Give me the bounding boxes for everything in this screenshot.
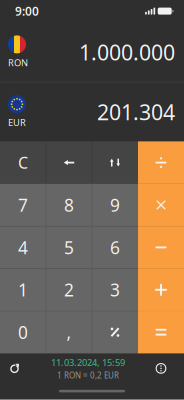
staticText: 4 [18, 236, 28, 259]
staticText: EUR [8, 116, 26, 129]
button[interactable]: C [0, 141, 46, 184]
button[interactable] [138, 226, 184, 269]
staticText: 8 [64, 193, 74, 216]
button[interactable]: 5 [46, 226, 92, 269]
button[interactable] [138, 184, 184, 226]
staticText: 201.304 [97, 98, 175, 126]
button[interactable]: 3 [92, 269, 138, 311]
button[interactable] [92, 141, 138, 184]
button[interactable]: 0 [0, 311, 46, 353]
staticText: 5 [64, 236, 74, 259]
staticText: RON [8, 56, 28, 69]
button[interactable] [138, 311, 184, 353]
button[interactable] [138, 141, 184, 184]
staticText: C [18, 152, 28, 173]
button[interactable]: 2 [46, 269, 92, 311]
staticText: 3 [110, 278, 120, 301]
staticText: 2 [64, 278, 74, 301]
button[interactable]: More options [147, 353, 175, 383]
button[interactable] [138, 269, 184, 311]
staticText: 1 [18, 278, 28, 301]
staticText: 1.000.000 [79, 38, 175, 66]
button[interactable] [46, 141, 92, 184]
button[interactable] [92, 311, 138, 353]
button[interactable]: 8 [46, 184, 92, 226]
button[interactable]: 1 [0, 269, 46, 311]
button[interactable]: 4 [0, 226, 46, 269]
button[interactable]: , [46, 311, 92, 353]
staticText: 9 [110, 193, 120, 216]
button[interactable]: EUR [0, 89, 40, 135]
staticText: 11.03.2024, 15:59 [51, 356, 125, 368]
button[interactable]: RON [0, 29, 40, 75]
staticText: , [66, 321, 71, 344]
button[interactable]: 9 [92, 184, 138, 226]
staticText: 9:00 [15, 3, 39, 19]
staticText: 0 [18, 321, 28, 344]
button[interactable]: 7 [0, 184, 46, 226]
staticText: 1 RON = 0,2 EUR [57, 370, 119, 381]
button[interactable]: 6 [92, 226, 138, 269]
staticText: 7 [18, 193, 28, 216]
button[interactable]: Refresh exchange rate [0, 353, 29, 383]
staticText: 6 [110, 236, 120, 259]
